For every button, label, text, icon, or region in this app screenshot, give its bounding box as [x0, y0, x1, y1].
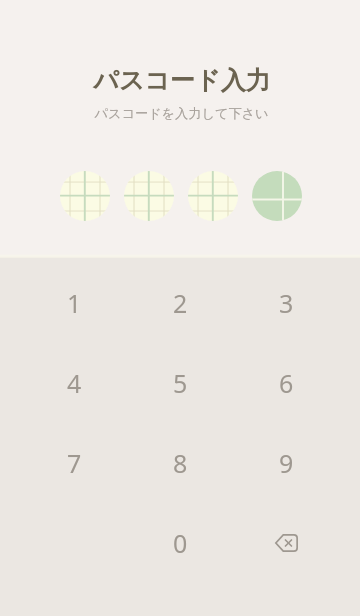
staticText: 3 — [279, 286, 294, 320]
button[interactable]: 9 — [233, 423, 339, 503]
button[interactable]: 0 — [127, 503, 233, 583]
button[interactable]: Delete — [233, 503, 339, 583]
other: Passcode digit 3 empty — [188, 171, 238, 221]
button[interactable]: 2 — [127, 263, 233, 343]
button[interactable]: 8 — [127, 423, 233, 503]
button[interactable]: 6 — [233, 343, 339, 423]
staticText: パスコードを入力して下さい — [94, 105, 269, 122]
staticText: 1 — [67, 286, 82, 320]
staticText: 8 — [173, 446, 188, 480]
staticText: パスコード入力 — [93, 65, 271, 96]
button[interactable]: 4 — [21, 343, 127, 423]
staticText: 9 — [279, 446, 294, 480]
other: Passcode digit 2 empty — [124, 171, 174, 221]
staticText: 4 — [67, 366, 82, 400]
staticText: 7 — [67, 446, 82, 480]
button[interactable]: 7 — [21, 423, 127, 503]
button[interactable]: 1 — [21, 263, 127, 343]
staticText: 0 — [173, 526, 188, 560]
button[interactable]: 5 — [127, 343, 233, 423]
staticText: 2 — [173, 286, 188, 320]
staticText: 5 — [173, 366, 188, 400]
other: Passcode digit 4 entered — [252, 171, 302, 221]
staticText: 6 — [279, 366, 294, 400]
other: Passcode digit 1 empty — [60, 171, 110, 221]
button[interactable]: 3 — [233, 263, 339, 343]
